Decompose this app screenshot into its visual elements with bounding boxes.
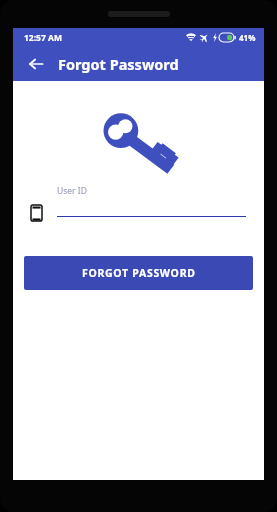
- staticText: User ID: [57, 185, 87, 197]
- staticText: 12:57 AM: [24, 32, 62, 44]
- staticText: FORGOT PASSWORD: [82, 266, 196, 280]
- button[interactable]: Back: [21, 49, 51, 79]
- button[interactable]: FORGOT PASSWORD: [24, 256, 253, 290]
- staticText: Forgot Password: [58, 54, 179, 74]
- button[interactable]: User ID: [57, 185, 246, 217]
- staticText: 41%: [239, 32, 256, 43]
